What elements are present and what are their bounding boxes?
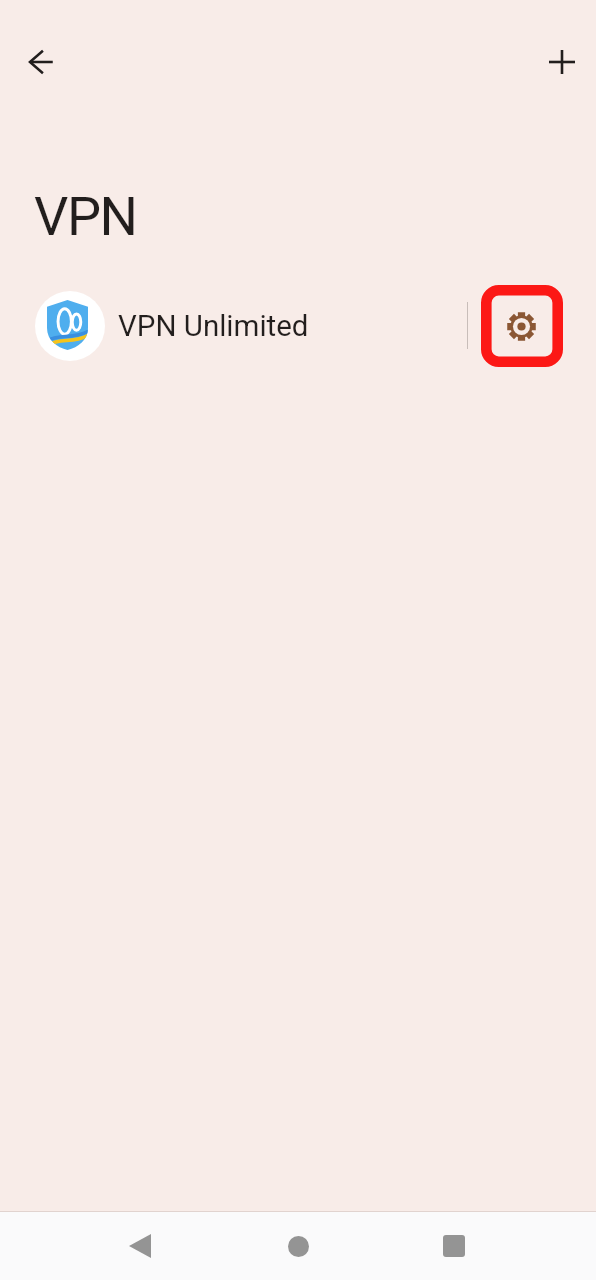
button[interactable]: Back <box>116 1222 164 1270</box>
button[interactable]: Recent apps <box>430 1222 478 1270</box>
button[interactable]: Home <box>274 1222 322 1270</box>
button[interactable]: Add VPN profile <box>537 37 587 87</box>
staticText: VPN Unlimited <box>118 309 309 344</box>
staticText: VPN <box>34 185 137 248</box>
button[interactable]: VPN Unlimited <box>0 278 596 374</box>
button[interactable]: Settings <box>481 285 563 367</box>
button[interactable]: Back <box>16 37 66 87</box>
